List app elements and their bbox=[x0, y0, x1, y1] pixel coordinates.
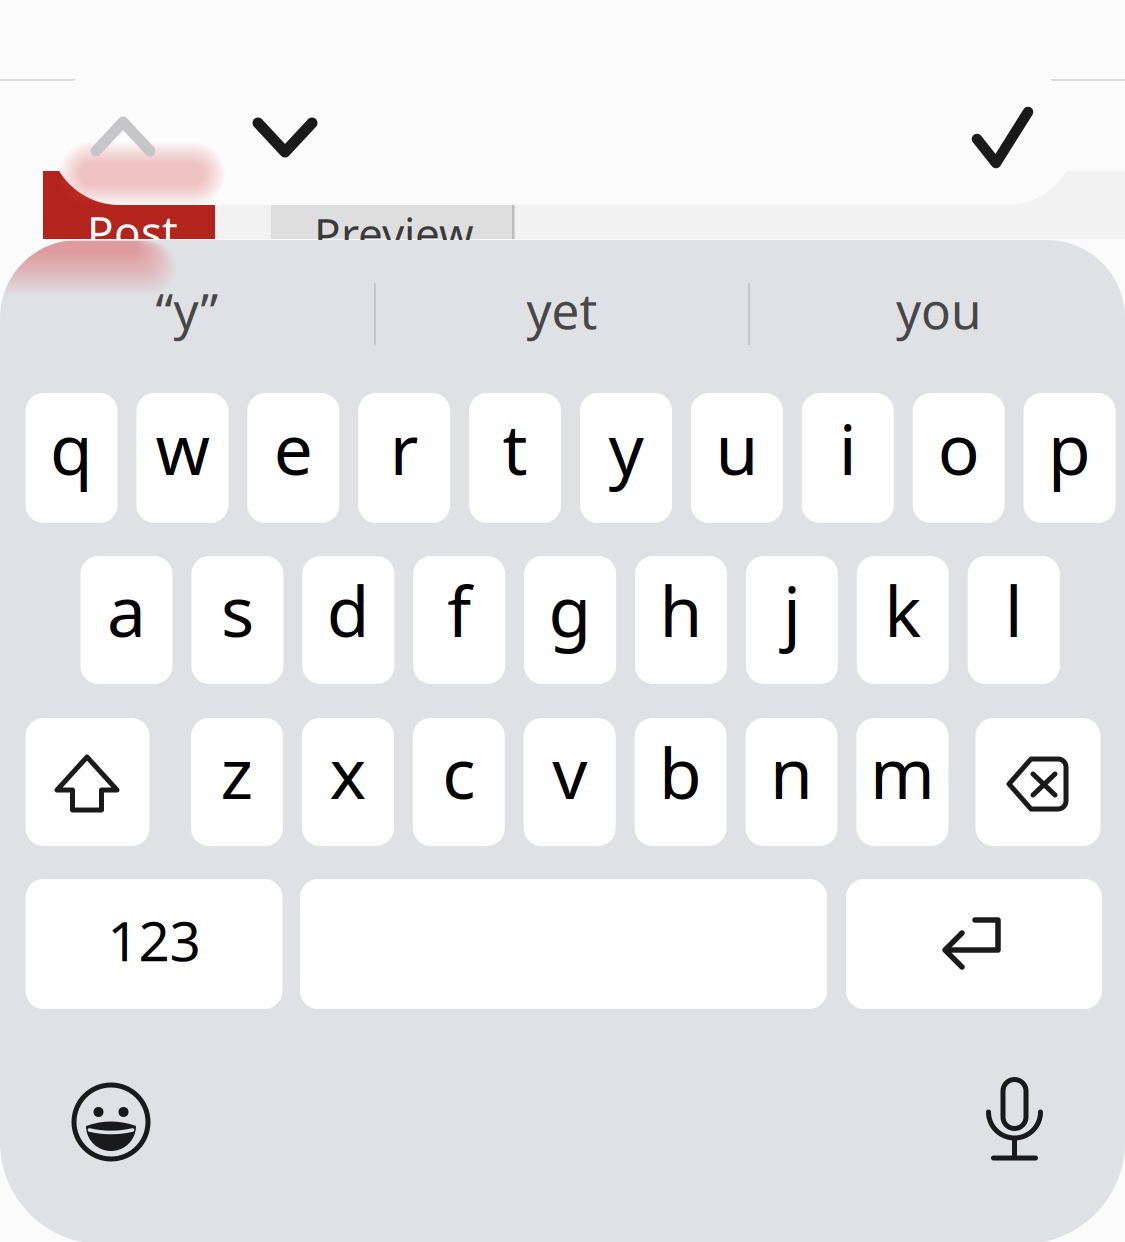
staticText: d bbox=[327, 564, 370, 656]
button[interactable]: q bbox=[25, 393, 117, 523]
staticText: f bbox=[447, 564, 471, 656]
staticText: Preview bbox=[314, 204, 474, 262]
staticText: p bbox=[1048, 402, 1091, 494]
button[interactable]: d bbox=[302, 556, 394, 684]
staticText: 123 bbox=[107, 904, 200, 976]
button[interactable]: s bbox=[191, 556, 283, 684]
staticText: u bbox=[715, 402, 758, 494]
button[interactable]: you bbox=[752, 254, 1125, 366]
staticText: “y” bbox=[155, 277, 218, 343]
staticText: v bbox=[552, 726, 587, 818]
staticText: t bbox=[503, 402, 528, 494]
staticText: k bbox=[884, 564, 921, 656]
button[interactable]: l bbox=[968, 556, 1060, 684]
staticText: l bbox=[1005, 564, 1023, 656]
button[interactable]: y bbox=[580, 393, 672, 523]
button[interactable]: t bbox=[469, 393, 561, 523]
staticText: e bbox=[274, 402, 313, 494]
button[interactable]: x bbox=[302, 718, 394, 846]
staticText: w bbox=[155, 402, 209, 494]
button[interactable]: j bbox=[746, 556, 838, 684]
staticText: n bbox=[770, 726, 813, 818]
button[interactable]: p bbox=[1024, 393, 1116, 523]
staticText: o bbox=[938, 402, 980, 494]
button[interactable]: “y” bbox=[0, 254, 374, 366]
staticText: b bbox=[659, 726, 702, 818]
button[interactable]: Shift bbox=[25, 718, 149, 846]
button[interactable]: Next field bbox=[0, 0, 1125, 1242]
button[interactable]: Done bbox=[0, 0, 1125, 1242]
button[interactable]: 123 bbox=[25, 879, 282, 1009]
button[interactable]: i bbox=[802, 393, 894, 523]
button[interactable]: c bbox=[413, 718, 505, 846]
button[interactable]: w bbox=[136, 393, 228, 523]
button[interactable]: Return bbox=[846, 879, 1102, 1009]
staticText: h bbox=[659, 564, 702, 656]
staticText: c bbox=[442, 726, 475, 818]
staticText: z bbox=[220, 726, 253, 818]
button[interactable]: Previous field bbox=[0, 0, 1125, 1242]
button[interactable]: r bbox=[358, 393, 450, 523]
staticText: yet bbox=[526, 277, 597, 343]
staticText: j bbox=[783, 564, 801, 656]
button[interactable]: z bbox=[191, 718, 283, 846]
staticText: q bbox=[50, 402, 93, 494]
button[interactable]: g bbox=[524, 556, 616, 684]
staticText: x bbox=[329, 726, 366, 818]
staticText: Post bbox=[87, 202, 178, 260]
button[interactable]: k bbox=[857, 556, 949, 684]
staticText: a bbox=[107, 564, 146, 656]
button[interactable]: h bbox=[635, 556, 727, 684]
staticText: s bbox=[221, 564, 254, 656]
button[interactable]: Emoji keyboard bbox=[0, 0, 1125, 1242]
button[interactable]: e bbox=[247, 393, 339, 523]
button[interactable]: b bbox=[635, 718, 727, 846]
staticText: m bbox=[870, 726, 935, 818]
staticText: you bbox=[896, 277, 981, 343]
staticText: r bbox=[390, 402, 419, 494]
button[interactable]: yet bbox=[376, 254, 748, 366]
staticText: g bbox=[549, 564, 592, 656]
button[interactable]: o bbox=[913, 393, 1005, 523]
button[interactable]: a bbox=[80, 556, 172, 684]
button[interactable]: v bbox=[524, 718, 616, 846]
button[interactable]: Delete bbox=[975, 718, 1100, 846]
button[interactable]: u bbox=[691, 393, 783, 523]
staticText: y bbox=[608, 402, 643, 494]
button[interactable]: f bbox=[413, 556, 505, 684]
button[interactable]: m bbox=[856, 718, 948, 846]
button[interactable]: n bbox=[745, 718, 837, 846]
staticText: i bbox=[839, 402, 857, 494]
button[interactable]: Dictate bbox=[0, 0, 1125, 1242]
